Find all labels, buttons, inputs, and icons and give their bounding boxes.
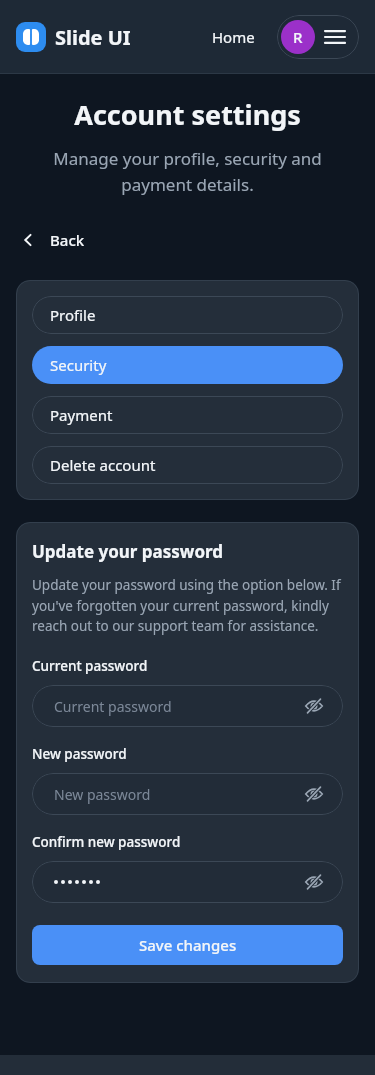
staticText: Manage your profile, security and paymen… — [26, 147, 349, 196]
button[interactable]: Slide UI — [16, 22, 131, 52]
staticText: New password — [32, 745, 127, 763]
staticText: Back — [50, 230, 85, 250]
button[interactable]: Toggle password visibility — [32, 861, 343, 903]
staticText: New password — [54, 785, 301, 804]
button[interactable]: Home — [206, 21, 261, 53]
button[interactable]: Security — [32, 346, 343, 384]
staticText: Profile — [50, 305, 96, 325]
staticText: Home — [212, 27, 255, 47]
staticText: Current password — [32, 657, 148, 675]
staticText: Account settings — [0, 96, 375, 133]
button[interactable]: Current password — [32, 685, 343, 727]
button[interactable]: Profile — [32, 296, 343, 334]
button[interactable]: Toggle password visibility — [301, 781, 327, 807]
staticText: Confirm new password — [32, 833, 181, 851]
button[interactable]: Payment — [32, 396, 343, 434]
button[interactable]: Back — [12, 224, 93, 256]
staticText: Slide UI — [55, 24, 131, 51]
staticText: Current password — [54, 697, 301, 716]
button[interactable]: Delete account — [32, 446, 343, 484]
staticText: Security — [50, 355, 107, 375]
staticText: Update your password — [32, 540, 224, 563]
staticText: Update your password using the option be… — [32, 576, 343, 635]
staticText: Save changes — [139, 935, 237, 955]
staticText: Payment — [50, 405, 113, 425]
staticText: R — [293, 27, 303, 47]
button[interactable]: Toggle password visibility — [301, 869, 327, 895]
button[interactable]: Save changes — [32, 925, 343, 965]
button[interactable]: Account menu — [277, 15, 359, 59]
button[interactable]: Toggle password visibility — [301, 693, 327, 719]
button[interactable]: New password — [32, 773, 343, 815]
staticText: Delete account — [50, 455, 156, 475]
